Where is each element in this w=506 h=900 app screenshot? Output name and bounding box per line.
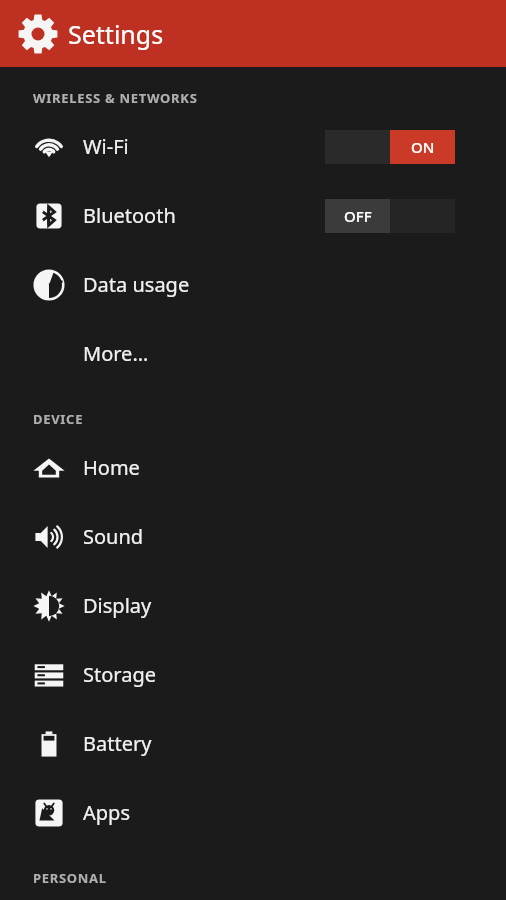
staticText: Sound xyxy=(83,523,144,550)
button[interactable]: Wi-Fi xyxy=(0,112,506,181)
button[interactable]: Bluetooth toggle xyxy=(325,199,455,233)
staticText: Display xyxy=(83,592,152,619)
staticText: DEVICE xyxy=(33,410,84,428)
staticText: PERSONAL xyxy=(33,869,107,887)
staticText: Storage xyxy=(83,661,156,688)
button[interactable]: More… xyxy=(0,319,506,388)
staticText: OFF xyxy=(344,206,372,226)
staticText: Apps xyxy=(83,799,130,826)
staticText: Data usage xyxy=(83,271,190,298)
button[interactable]: Data usage xyxy=(0,250,506,319)
staticText: Wi-Fi xyxy=(83,133,129,160)
button[interactable]: Sound xyxy=(0,502,506,571)
button[interactable]: Home xyxy=(0,433,506,502)
button[interactable]: Wi-Fi toggle xyxy=(325,130,455,164)
staticText: Home xyxy=(83,454,140,481)
staticText: Battery xyxy=(83,730,152,757)
button[interactable]: Display xyxy=(0,571,506,640)
staticText: WIRELESS & NETWORKS xyxy=(33,89,198,107)
button[interactable]: Battery xyxy=(0,709,506,778)
other: Settings icon xyxy=(17,13,59,55)
staticText: ON xyxy=(411,137,435,157)
button[interactable]: Storage xyxy=(0,640,506,709)
staticText: Bluetooth xyxy=(83,202,176,229)
staticText: More… xyxy=(83,340,149,367)
button[interactable]: Apps xyxy=(0,778,506,847)
staticText: Settings xyxy=(68,17,164,51)
button[interactable]: Bluetooth xyxy=(0,181,506,250)
